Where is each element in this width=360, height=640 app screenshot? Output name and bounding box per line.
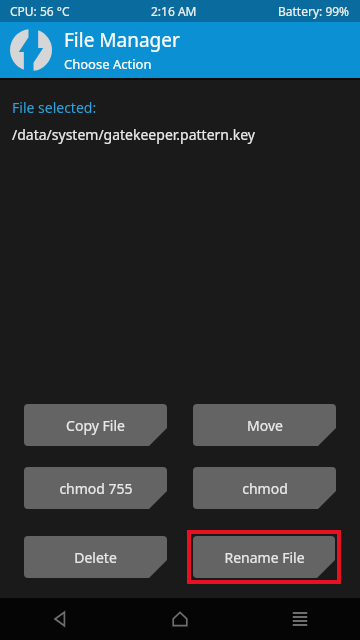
staticText: chmod 755	[59, 479, 133, 498]
button[interactable]: Move	[193, 404, 336, 446]
button[interactable]: Delete	[24, 536, 167, 578]
staticText: /data/system/gatekeeper.pattern.key	[12, 125, 255, 144]
staticText: Choose Action	[64, 55, 152, 73]
staticText: chmod	[242, 479, 288, 498]
staticText: Battery: 99%	[278, 3, 350, 19]
staticText: Move	[247, 416, 283, 435]
other: TWRP logo	[10, 29, 52, 71]
staticText: File Manager	[64, 27, 180, 53]
staticText: 2:16 AM	[151, 3, 197, 19]
staticText: Copy File	[66, 416, 125, 435]
staticText: Delete	[74, 548, 117, 567]
button[interactable]: Menu	[240, 598, 360, 640]
button[interactable]: chmod	[193, 467, 336, 509]
staticText: File selected:	[12, 98, 97, 117]
button[interactable]: chmod 755	[24, 467, 167, 509]
button[interactable]: TWRP logo	[0, 22, 360, 78]
button[interactable]: Home	[120, 598, 240, 640]
button[interactable]: Copy File	[24, 404, 167, 446]
staticText: CPU: 56 °C	[10, 3, 70, 19]
staticText: Rename File	[224, 548, 305, 567]
button[interactable]: Rename File	[193, 536, 335, 578]
button[interactable]: Back	[0, 598, 120, 640]
